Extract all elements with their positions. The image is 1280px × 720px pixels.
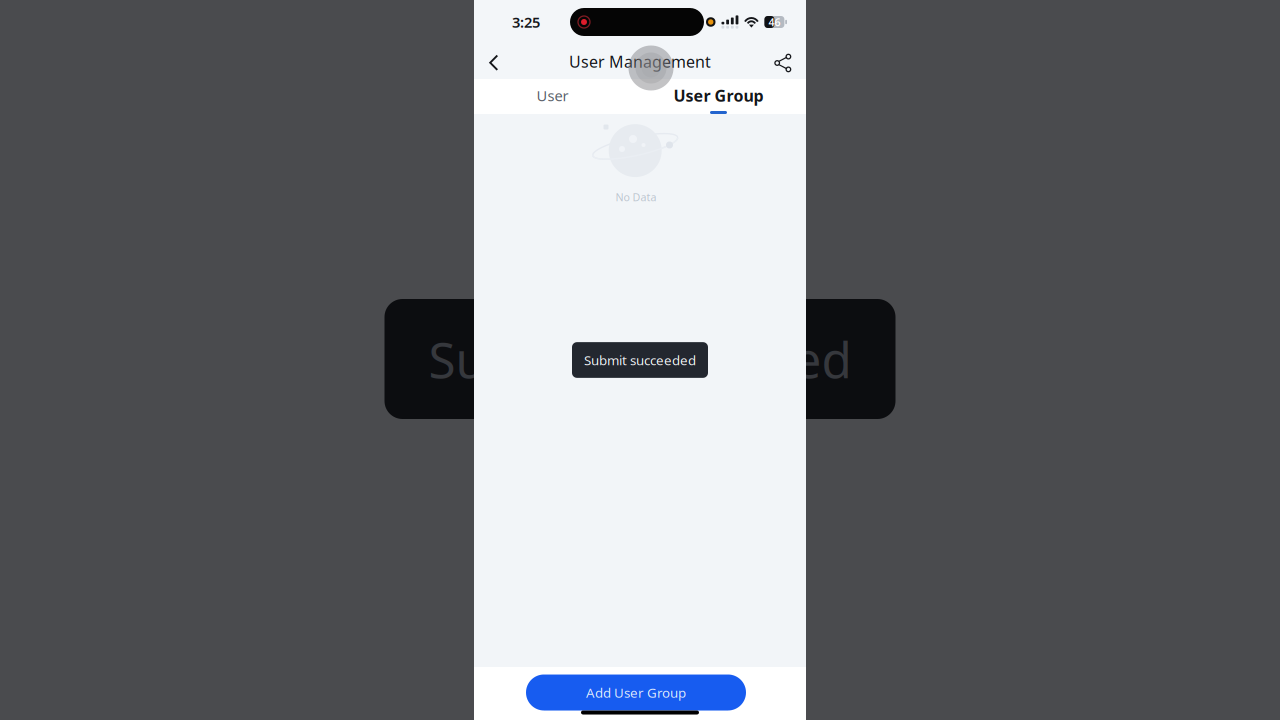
staticText: 3:25 [512, 12, 540, 32]
staticText: User Management [569, 51, 711, 72]
staticText: User [536, 86, 568, 105]
staticText: No Data [615, 190, 656, 204]
button[interactable]: User [469, 78, 635, 113]
button[interactable]: User Group [635, 78, 801, 113]
staticText: Add User Group [586, 684, 686, 701]
staticText: Submit succeeded [584, 351, 696, 369]
button[interactable]: Back [477, 44, 511, 79]
button[interactable]: Share [765, 44, 799, 79]
staticText: 46 [769, 15, 781, 29]
staticText: Submit succeeded [428, 326, 851, 392]
button[interactable]: Add User Group [526, 674, 746, 710]
staticText: User Group [673, 85, 763, 106]
